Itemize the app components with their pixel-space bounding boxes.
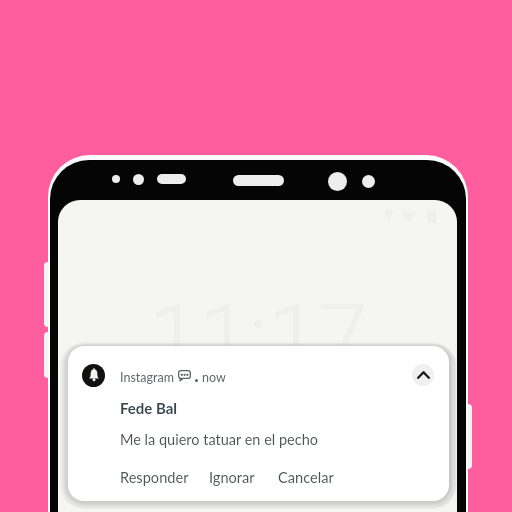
button[interactable]: Cancelar — [278, 469, 334, 487]
staticText: 11:17 — [149, 286, 368, 391]
staticText: now — [202, 370, 226, 385]
button[interactable]: Instagram — [68, 346, 449, 501]
staticText: Fede Bal — [120, 399, 178, 417]
button[interactable]: Ignorar — [209, 469, 255, 487]
staticText: Me la quiero tatuar en el pecho — [120, 431, 318, 448]
button[interactable]: Collapse notification — [412, 364, 434, 386]
staticText: Responder — [120, 469, 189, 487]
staticText: Ignorar — [209, 469, 255, 487]
staticText: Instagram — [120, 370, 174, 385]
staticText: Cancelar — [278, 469, 334, 487]
button[interactable]: Responder — [120, 469, 189, 487]
